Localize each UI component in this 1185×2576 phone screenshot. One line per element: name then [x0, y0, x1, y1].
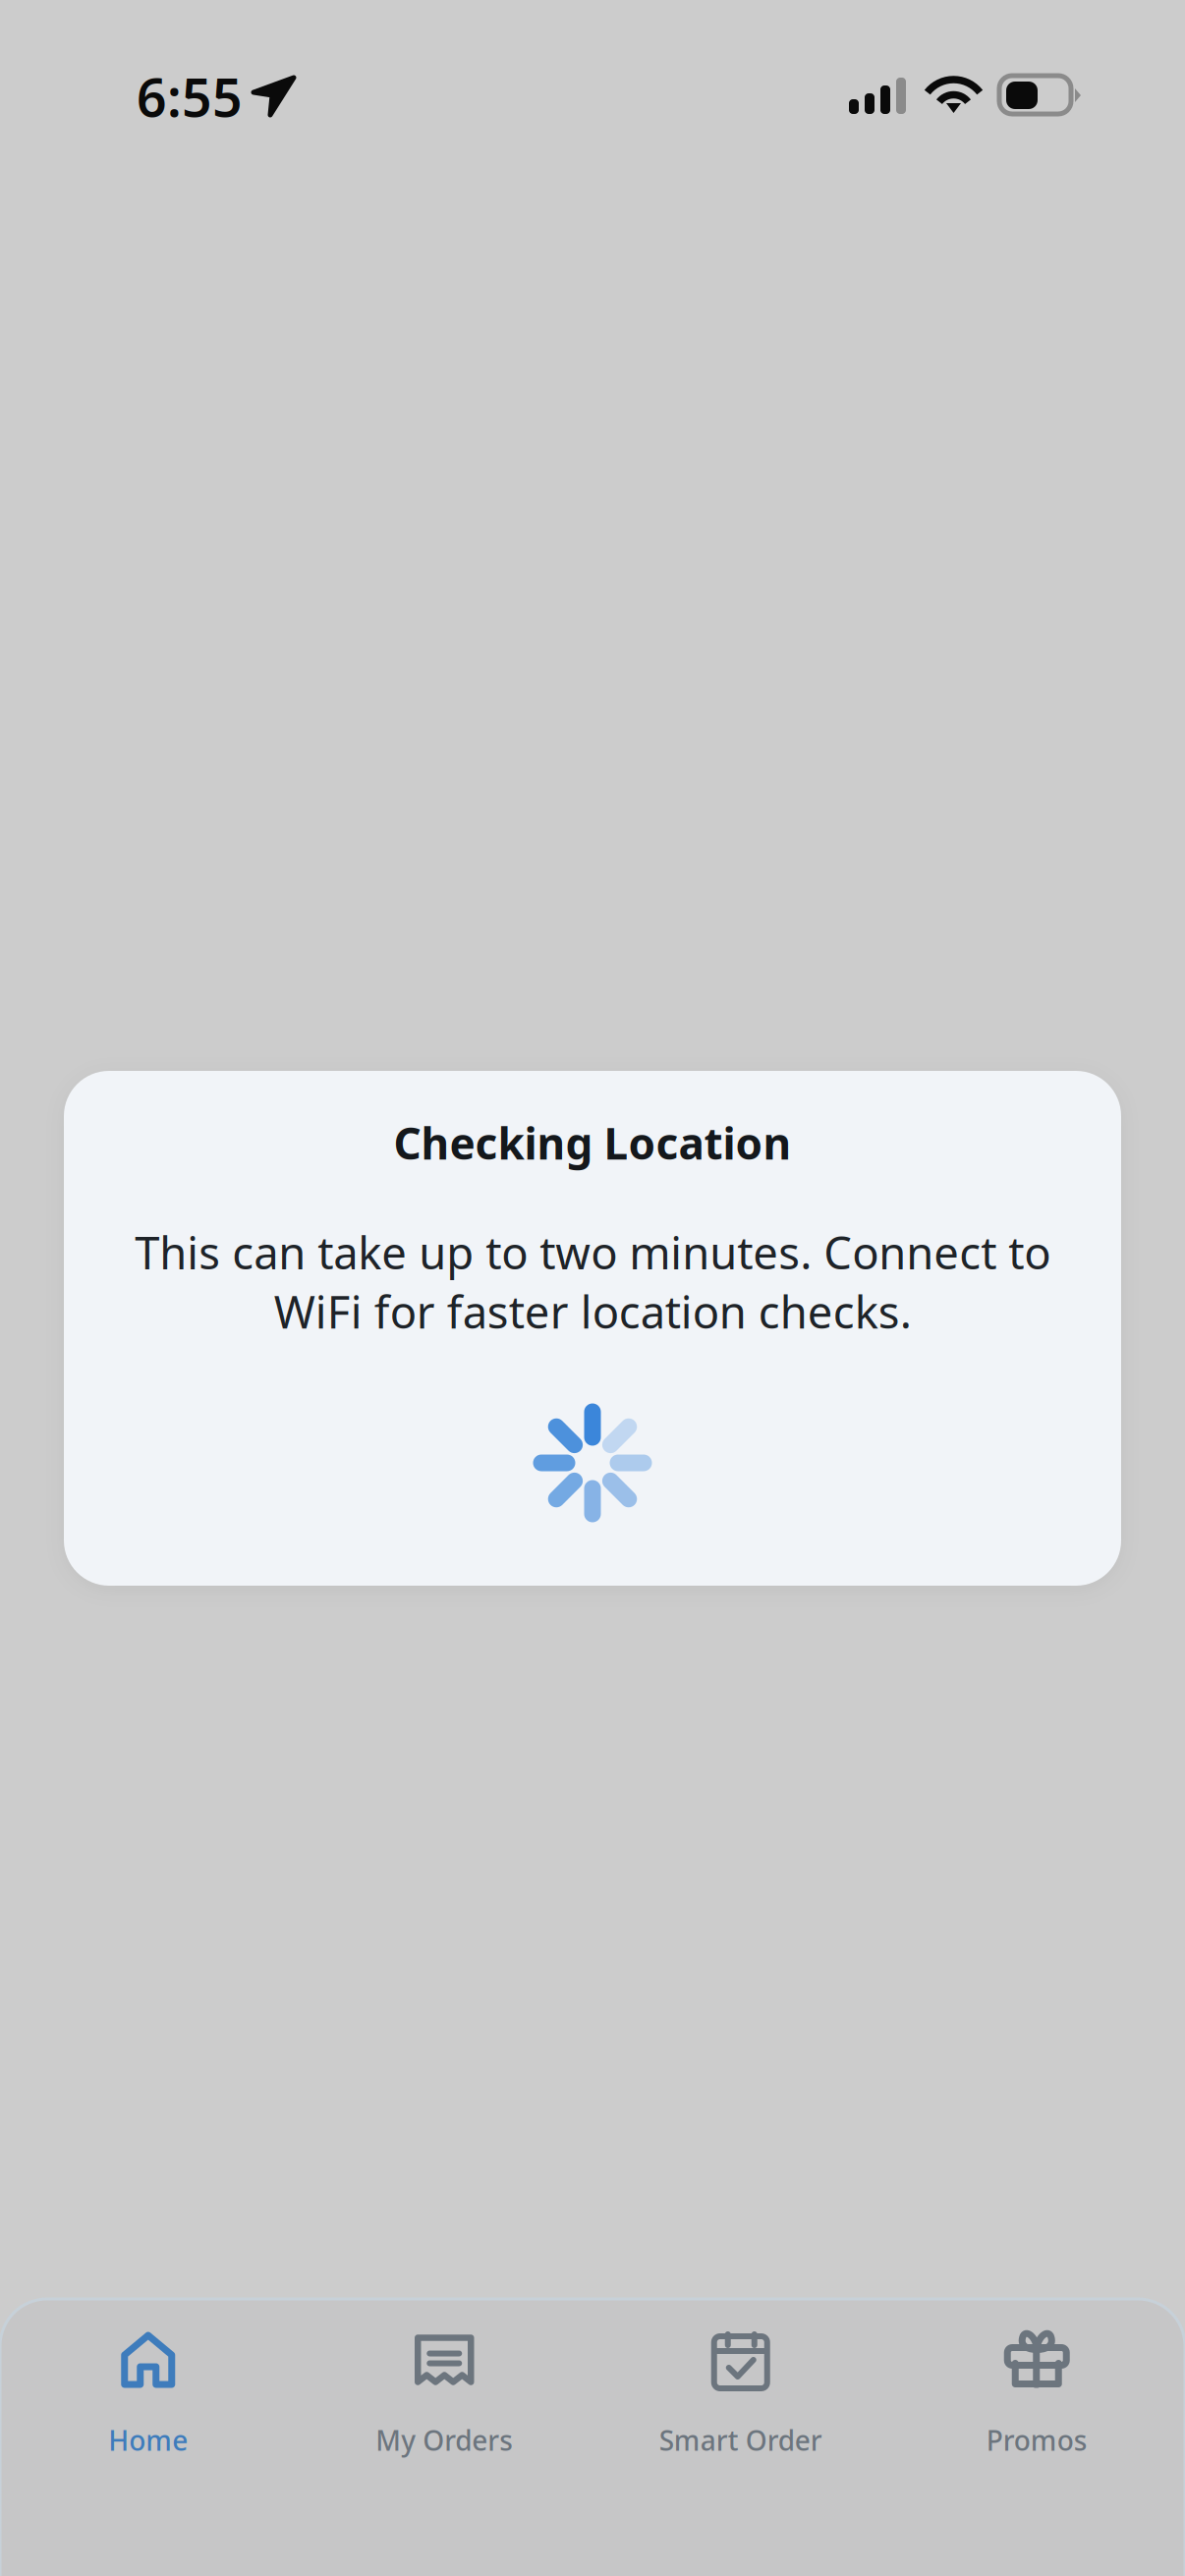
staticText: Smart Order: [659, 2422, 822, 2458]
button[interactable]: Home: [0, 2299, 296, 2576]
staticText: 6:55: [137, 62, 243, 131]
button[interactable]: Smart Order: [592, 2299, 889, 2576]
staticText: Promos: [986, 2422, 1088, 2458]
button[interactable]: Promos: [889, 2299, 1185, 2576]
staticText: My Orders: [376, 2422, 513, 2458]
staticText: Checking Location: [394, 1114, 791, 1171]
staticText: Home: [108, 2422, 188, 2458]
button[interactable]: My Orders: [296, 2299, 592, 2576]
staticText: This can take up to two minutes. Connect…: [135, 1223, 1050, 1341]
